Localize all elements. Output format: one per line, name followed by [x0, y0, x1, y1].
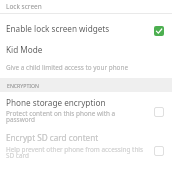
- button[interactable]: Encrypt SD card content: [0, 126, 172, 172]
- staticText: Give a child limited access to your phon…: [6, 63, 129, 72]
- staticText: Kid Mode: [6, 44, 43, 55]
- button[interactable]: Kid Mode: [0, 41, 172, 76]
- staticText: Help prevent other phone from accessing …: [6, 145, 144, 160]
- button[interactable]: Enable lock screen widgets: [0, 14, 172, 41]
- staticText: Enable lock screen widgets: [6, 23, 110, 34]
- staticText: Lock screen: [6, 2, 42, 11]
- staticText: Encrypt SD card content: [6, 132, 99, 143]
- staticText: ENCRYPTION: [7, 82, 40, 89]
- staticText: Protect content on this phone with a pas…: [6, 109, 116, 124]
- button[interactable]: Phone storage encryption: [0, 92, 172, 126]
- staticText: Phone storage encryption: [6, 97, 106, 108]
